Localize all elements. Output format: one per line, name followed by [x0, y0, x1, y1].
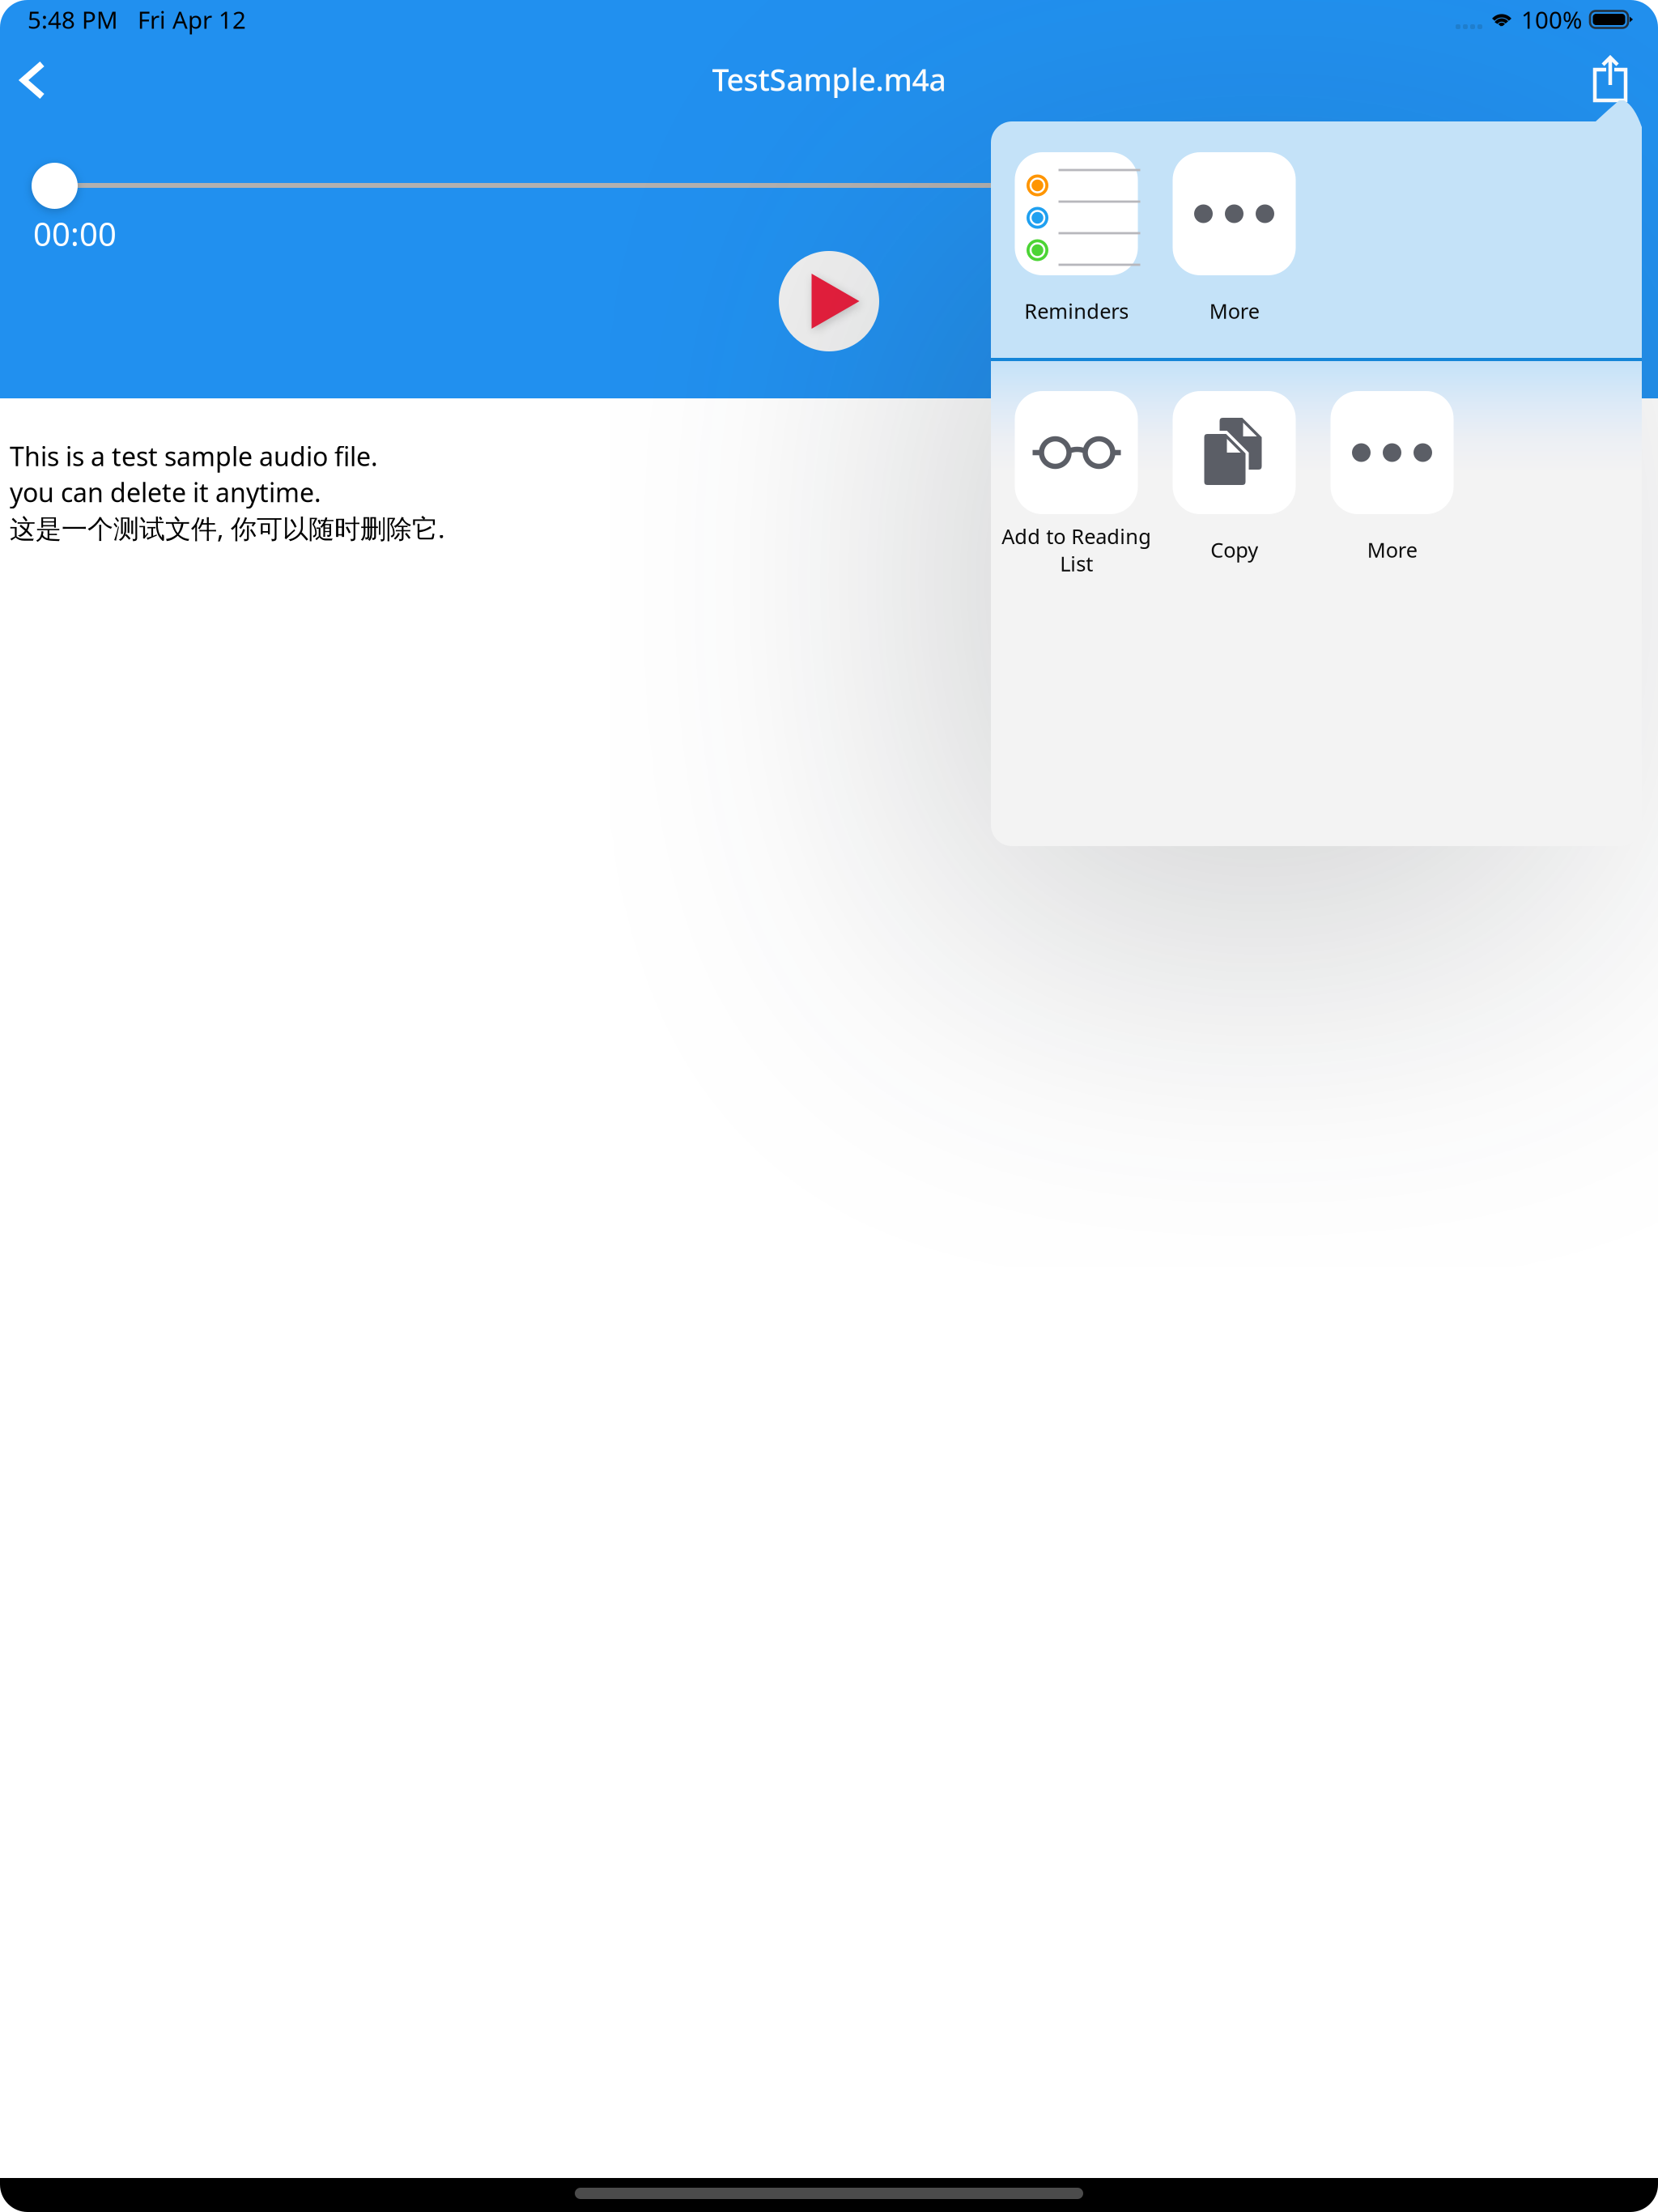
staticText: Add to Reading List: [1001, 523, 1151, 577]
button[interactable]: Reminders: [997, 152, 1155, 347]
button[interactable]: More: [1155, 152, 1313, 347]
staticText: TestSample.m4a: [712, 59, 946, 99]
staticText: More: [1209, 297, 1259, 325]
staticText: 100%: [1521, 4, 1582, 35]
staticText: This is a test sample audio file.: [10, 439, 378, 473]
staticText: More: [1367, 536, 1417, 563]
button[interactable]: Copy: [1155, 391, 1313, 585]
staticText: you can delete it anytime.: [10, 475, 321, 509]
button[interactable]: Add to Reading List: [997, 391, 1155, 585]
button[interactable]: Play: [779, 251, 879, 351]
staticText: 这是一个测试文件, 你可以随时删除它.: [10, 511, 445, 545]
staticText: Reminders: [1024, 297, 1129, 325]
staticText: 5:48 PM: [28, 4, 118, 35]
staticText: 00:00: [33, 212, 117, 255]
staticText: Fri Apr 12: [138, 4, 246, 35]
button[interactable]: Back: [6, 46, 74, 114]
button[interactable]: Share: [1579, 40, 1650, 112]
staticText: Copy: [1210, 536, 1258, 563]
button[interactable]: More: [1313, 391, 1471, 585]
